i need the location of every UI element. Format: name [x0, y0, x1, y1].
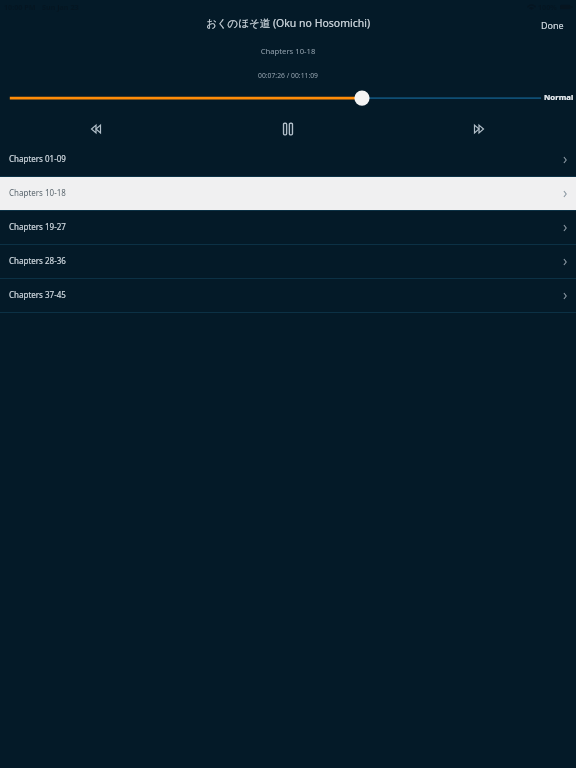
button[interactable]: Chapters 19-27 — [0, 211, 576, 244]
staticText: Chapters 28-36 — [9, 255, 66, 266]
staticText: おくのほそ道 (Oku no Hosomichi) — [0, 16, 576, 30]
button[interactable]: Rewind — [84, 117, 108, 141]
button[interactable]: Chapters 28-36 — [0, 245, 576, 278]
staticText: 00:07:26 / 00:11:09 — [0, 71, 576, 80]
button[interactable]: Chapters 37-45 — [0, 279, 576, 312]
button[interactable]: Chapters 10-18 — [0, 177, 576, 210]
staticText: Chapters 19-27 — [9, 221, 66, 232]
button[interactable]: Done — [534, 16, 570, 34]
button[interactable]: Pause — [276, 117, 300, 141]
staticText: Done — [541, 19, 564, 31]
staticText: Chapters 10-18 — [9, 187, 66, 198]
staticText: Chapters 01-09 — [9, 153, 66, 164]
button[interactable]: Fast forward — [467, 117, 491, 141]
button[interactable]: Chapters 01-09 — [0, 143, 576, 176]
staticText: Chapters 37-45 — [9, 289, 66, 300]
staticText: Normal — [544, 92, 574, 103]
staticText: Chapters 10-18 — [0, 46, 576, 56]
